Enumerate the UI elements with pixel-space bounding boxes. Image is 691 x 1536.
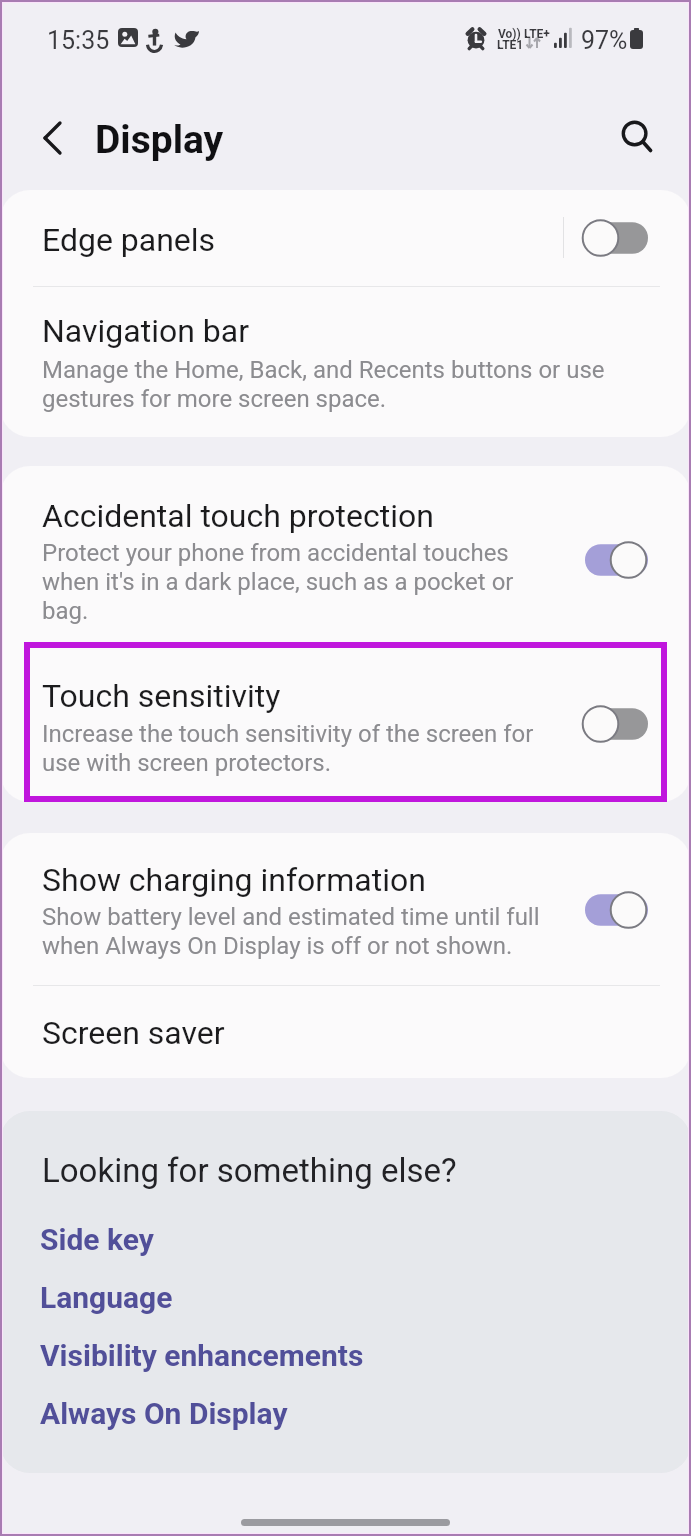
staticText: Manage the Home, Back, and Recents butto… (42, 355, 617, 413)
button[interactable] (0, 643, 691, 802)
staticText: 97% (581, 25, 628, 55)
staticText: Show battery level and estimated time un… (42, 902, 557, 960)
staticText: Looking for something else? (42, 1151, 457, 1190)
staticText: Touch sensitivity (42, 677, 281, 715)
staticText: Screen saver (42, 1014, 225, 1052)
staticText: Vo)) (498, 27, 521, 41)
staticText: 15:35 (47, 25, 110, 55)
button[interactable]: Switch off (582, 205, 670, 271)
staticText: Increase the touch sensitivity of the sc… (42, 719, 557, 777)
staticText: Visibility enhancements (40, 1338, 364, 1373)
button[interactable]: Switch on (582, 877, 670, 943)
button[interactable]: Always On Display (30, 1388, 450, 1440)
button[interactable]: Side key (30, 1214, 450, 1266)
staticText: Display (95, 117, 224, 162)
staticText: Accidental touch protection (42, 497, 434, 535)
button[interactable]: Search (611, 110, 659, 158)
button[interactable]: Display (95, 117, 224, 162)
staticText: LTE1 (497, 38, 524, 52)
button[interactable]: Switch on (582, 527, 670, 593)
button[interactable]: 15:35 (47, 25, 110, 55)
button[interactable] (0, 285, 691, 436)
button[interactable] (0, 466, 691, 643)
staticText: Always On Display (40, 1396, 288, 1431)
button[interactable]: Switch off (582, 691, 670, 757)
button[interactable] (0, 986, 691, 1078)
staticText: LTE+ (524, 27, 550, 41)
button[interactable]: Language (30, 1272, 450, 1324)
staticText: Show charging information (42, 861, 426, 899)
staticText: Protect your phone from accidental touch… (42, 538, 542, 625)
staticText: Side key (40, 1222, 154, 1257)
button[interactable]: Navigate up (28, 114, 76, 162)
button[interactable] (0, 190, 691, 284)
staticText: Edge panels (42, 221, 216, 259)
staticText: Language (40, 1280, 173, 1315)
button[interactable] (0, 833, 691, 985)
button[interactable]: Visibility enhancements (30, 1330, 450, 1382)
staticText: Navigation bar (42, 312, 249, 350)
